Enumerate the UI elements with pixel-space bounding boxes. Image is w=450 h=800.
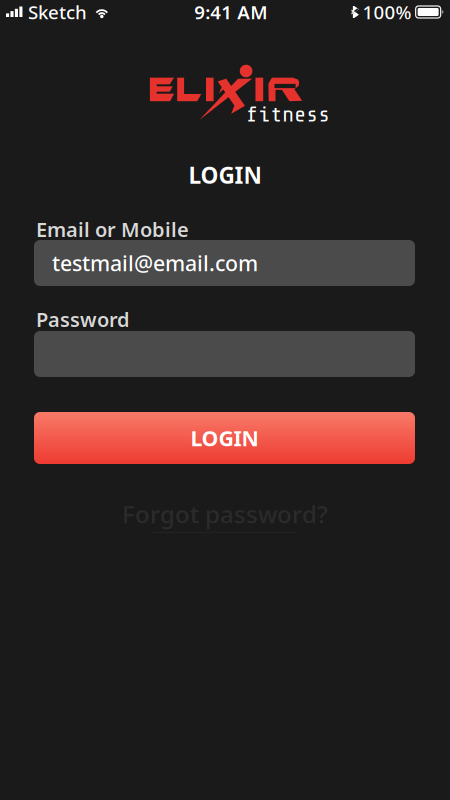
staticText: 100% xyxy=(362,0,411,24)
staticText: 9:41 AM xyxy=(194,0,267,24)
staticText: testmail@email.com xyxy=(52,249,258,277)
staticText: LOGIN xyxy=(190,424,258,452)
button[interactable]: Forgot password? xyxy=(0,498,450,533)
staticText: Forgot password? xyxy=(122,498,328,530)
staticText: Email or Mobile xyxy=(36,216,189,243)
staticText: fitness xyxy=(246,101,330,127)
staticText: Password xyxy=(36,306,130,333)
staticText: Sketch xyxy=(28,0,87,24)
button[interactable]: LOGIN xyxy=(34,412,415,464)
staticText: LOGIN xyxy=(188,160,261,190)
